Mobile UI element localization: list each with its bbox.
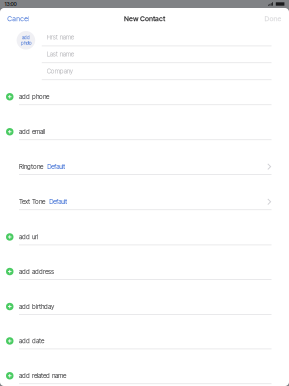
staticText: add bbox=[22, 35, 30, 40]
button[interactable]: add date bbox=[0, 315, 289, 349]
button[interactable]: Last name bbox=[42, 46, 271, 63]
staticText: photo bbox=[21, 40, 31, 46]
button[interactable]: Company bbox=[42, 63, 271, 80]
staticText: add phone bbox=[19, 93, 49, 101]
button[interactable]: add email bbox=[0, 105, 289, 140]
staticText: add address bbox=[19, 268, 54, 275]
staticText: Company bbox=[47, 67, 73, 75]
button[interactable]: add related name bbox=[0, 349, 289, 384]
button[interactable]: Cancel bbox=[0, 12, 36, 26]
staticText: Text Tone bbox=[19, 198, 45, 206]
button[interactable]: add birthday bbox=[0, 280, 289, 315]
button[interactable]: Done bbox=[257, 12, 289, 26]
button[interactable]: Text Tone bbox=[0, 175, 289, 210]
staticText: add date bbox=[19, 337, 44, 345]
button[interactable]: Add photo bbox=[17, 31, 35, 50]
button[interactable]: First name bbox=[42, 29, 271, 46]
staticText: Cancel bbox=[7, 14, 29, 23]
button[interactable]: add phone bbox=[0, 80, 289, 105]
staticText: Done bbox=[264, 14, 281, 23]
staticText: Default bbox=[49, 198, 67, 206]
staticText: Last name bbox=[47, 50, 74, 58]
staticText: Default bbox=[47, 163, 65, 170]
staticText: Ringtone bbox=[19, 163, 43, 170]
staticText: add url bbox=[19, 233, 38, 241]
staticText: First name bbox=[47, 33, 74, 41]
button[interactable]: add address bbox=[0, 245, 289, 280]
staticText: add email bbox=[19, 128, 45, 136]
staticText: add related name bbox=[19, 372, 66, 380]
staticText: 13:00 bbox=[4, 1, 16, 7]
button[interactable]: add url bbox=[0, 210, 289, 245]
staticText: New Contact bbox=[124, 14, 165, 23]
staticText: add birthday bbox=[19, 303, 54, 310]
button[interactable]: Ringtone bbox=[0, 140, 289, 175]
